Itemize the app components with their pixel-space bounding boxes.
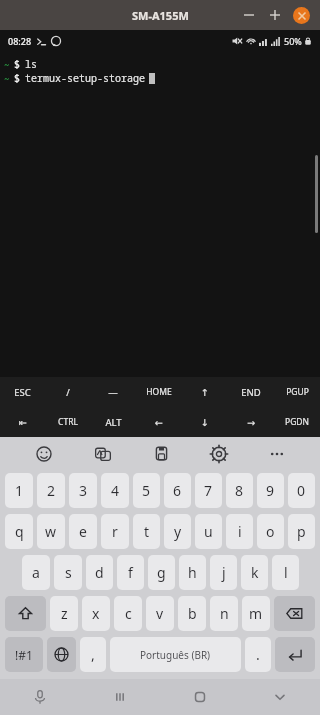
button[interactable]: v: [146, 596, 174, 631]
button[interactable]: Shift: [5, 596, 46, 631]
staticText: w: [45, 522, 57, 541]
staticText: ⇤: [19, 417, 27, 428]
staticText: r: [112, 522, 118, 541]
staticText: ↑: [201, 387, 209, 398]
button[interactable]: Hide keyboard: [240, 679, 320, 715]
staticText: PGDN: [285, 416, 309, 428]
staticText: ↓: [201, 417, 209, 428]
button[interactable]: —: [90, 377, 136, 407]
button[interactable]: s: [54, 555, 82, 590]
staticText: HOME: [146, 386, 172, 398]
staticText: —: [108, 386, 118, 399]
button[interactable]: 1: [5, 473, 33, 508]
button[interactable]: Clipboard: [132, 437, 190, 470]
staticText: SM-A155M: [132, 8, 189, 23]
button[interactable]: Settings: [190, 437, 248, 470]
button[interactable]: More options: [248, 437, 306, 470]
button[interactable]: Enter: [275, 637, 315, 672]
button[interactable]: o: [257, 514, 284, 549]
button[interactable]: c: [114, 596, 142, 631]
button[interactable]: d: [86, 555, 113, 590]
button[interactable]: PGDN: [274, 407, 320, 437]
staticText: s: [65, 563, 72, 582]
button[interactable]: 0: [288, 473, 315, 508]
button[interactable]: Translate: [73, 437, 132, 470]
staticText: 5: [142, 481, 151, 500]
button[interactable]: 9: [257, 473, 284, 508]
button[interactable]: e: [69, 514, 97, 549]
button[interactable]: Home: [160, 679, 240, 715]
button[interactable]: !#1: [5, 637, 43, 672]
staticText: j: [222, 563, 226, 582]
button[interactable]: j: [210, 555, 237, 590]
button[interactable]: r: [101, 514, 129, 549]
staticText: CTRL: [58, 416, 78, 428]
button[interactable]: END: [228, 377, 274, 407]
staticText: 3: [79, 481, 88, 500]
staticText: d: [95, 563, 104, 582]
button[interactable]: Recents: [80, 679, 160, 715]
button[interactable]: h: [179, 555, 206, 590]
button[interactable]: →: [228, 407, 274, 437]
button[interactable]: HOME: [136, 377, 182, 407]
button[interactable]: Close: [288, 2, 314, 28]
staticText: n: [220, 604, 229, 623]
button[interactable]: f: [117, 555, 144, 590]
button[interactable]: 4: [101, 473, 129, 508]
button[interactable]: 2: [37, 473, 65, 508]
staticText: $: [14, 71, 20, 85]
button[interactable]: q: [5, 514, 33, 549]
button[interactable]: ←: [136, 407, 182, 437]
staticText: b: [188, 604, 197, 623]
button[interactable]: Português (BR): [110, 637, 241, 672]
button[interactable]: 7: [195, 473, 222, 508]
button[interactable]: x: [82, 596, 110, 631]
button[interactable]: ESC: [0, 377, 45, 407]
staticText: 9: [266, 481, 275, 500]
button[interactable]: a: [22, 555, 50, 590]
button[interactable]: y: [164, 514, 191, 549]
staticText: .: [256, 645, 260, 664]
button[interactable]: k: [241, 555, 268, 590]
button[interactable]: z: [50, 596, 78, 631]
button[interactable]: b: [178, 596, 206, 631]
button[interactable]: .: [245, 637, 271, 672]
staticText: ,: [91, 645, 95, 664]
button[interactable]: ⇤: [0, 407, 45, 437]
button[interactable]: /: [45, 377, 90, 407]
button[interactable]: Maximize: [262, 2, 288, 28]
button[interactable]: 5: [133, 473, 160, 508]
button[interactable]: Minimize: [236, 2, 262, 28]
staticText: END: [241, 386, 261, 399]
button[interactable]: 8: [226, 473, 253, 508]
button[interactable]: i: [226, 514, 253, 549]
staticText: o: [266, 522, 275, 541]
staticText: 50%: [284, 35, 302, 47]
button[interactable]: Voice input: [0, 679, 80, 715]
staticText: ls: [25, 57, 37, 71]
button[interactable]: Emoji: [14, 437, 73, 470]
button[interactable]: ↓: [182, 407, 228, 437]
button[interactable]: u: [195, 514, 222, 549]
button[interactable]: p: [288, 514, 315, 549]
staticText: 0: [297, 481, 306, 500]
button[interactable]: Backspace: [274, 596, 315, 631]
button[interactable]: PGUP: [274, 377, 320, 407]
button[interactable]: CTRL: [45, 407, 90, 437]
button[interactable]: ↑: [182, 377, 228, 407]
button[interactable]: 3: [69, 473, 97, 508]
staticText: u: [204, 522, 213, 541]
button[interactable]: ALT: [90, 407, 136, 437]
button[interactable]: 6: [164, 473, 191, 508]
button[interactable]: w: [37, 514, 65, 549]
staticText: i: [238, 522, 242, 541]
staticText: Português (BR): [140, 648, 211, 662]
button[interactable]: t: [133, 514, 160, 549]
button[interactable]: n: [210, 596, 238, 631]
button[interactable]: g: [148, 555, 175, 590]
button[interactable]: ,: [80, 637, 106, 672]
button[interactable]: Change language: [47, 637, 76, 672]
button[interactable]: l: [272, 555, 299, 590]
button[interactable]: m: [242, 596, 270, 631]
staticText: /: [66, 386, 70, 399]
